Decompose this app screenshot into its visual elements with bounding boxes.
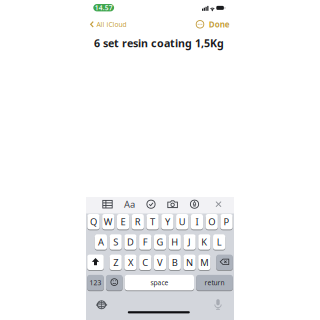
staticText: X [128,256,133,268]
staticText: M [200,256,208,268]
staticText: U [179,215,186,228]
button[interactable]: S [110,234,122,250]
staticText: Z [113,256,118,268]
button[interactable]: E [117,213,129,230]
staticText: E [120,215,125,228]
staticText: 14.57 [95,3,113,12]
staticText: A [98,236,104,248]
staticText: T [150,215,155,228]
button[interactable]: More [195,20,204,29]
staticText: V [157,256,163,268]
button[interactable]: return [196,274,233,291]
button[interactable]: W [102,213,114,230]
button[interactable]: C [139,254,151,270]
button[interactable]: 123 [87,274,104,291]
staticText: S [113,236,118,248]
button[interactable]: Camera [167,200,178,209]
staticText: R [135,215,141,228]
button[interactable]: P [220,213,233,230]
staticText: J [188,236,191,248]
staticText: Done [209,19,230,30]
staticText: H [171,236,178,248]
button[interactable]: R [132,213,144,230]
button[interactable]: B [169,254,181,270]
button[interactable]: Y [161,213,173,230]
button[interactable]: Dictate [213,299,223,310]
button[interactable]: U [176,213,188,230]
button[interactable]: L [213,234,225,250]
button[interactable]: G [154,234,166,250]
button[interactable]: A [95,234,107,250]
staticText: K [201,236,207,248]
staticText: 6 set resin coating 1,5Kg [94,36,224,50]
staticText: Y [165,215,170,228]
button[interactable]: All iCloud [90,18,132,30]
button[interactable]: Done [209,18,230,30]
button[interactable]: Table [102,200,113,209]
button[interactable]: N [183,254,196,270]
staticText: 123 [89,278,101,287]
button[interactable]: Format [124,198,135,210]
button[interactable]: J [183,234,196,250]
staticText: C [142,256,148,268]
button[interactable]: T [146,213,159,230]
button[interactable]: Next keyboard [96,300,106,310]
staticText: D [127,236,134,248]
staticText: Aa [124,198,135,210]
staticText: F [143,236,148,248]
button[interactable]: Emoji [106,274,123,291]
staticText: Q [90,215,97,228]
staticText: O [208,215,215,228]
button[interactable]: V [154,254,166,270]
staticText: L [217,236,222,248]
button[interactable]: I [191,213,203,230]
button[interactable]: H [169,234,181,250]
staticText: W [104,215,113,228]
button[interactable]: space [125,274,194,291]
staticText: space [150,278,168,287]
button[interactable]: O [206,213,218,230]
staticText: I [195,215,198,228]
button[interactable]: Close [215,201,222,207]
staticText: G [156,236,163,248]
staticText: All iCloud [96,20,126,29]
staticText: N [186,256,193,268]
button[interactable]: M [198,254,210,270]
button[interactable]: Shift [87,254,104,270]
button[interactable]: Markup [190,199,199,209]
button[interactable]: X [124,254,136,270]
button[interactable]: F [139,234,151,250]
staticText: B [172,256,178,268]
button[interactable]: Delete [216,254,233,270]
button[interactable]: K [198,234,210,250]
button[interactable]: D [124,234,136,250]
button[interactable]: Z [110,254,122,270]
staticText: P [223,215,229,228]
staticText: return [204,278,224,287]
button[interactable]: Checklist [146,199,156,209]
button[interactable]: Q [87,213,100,230]
